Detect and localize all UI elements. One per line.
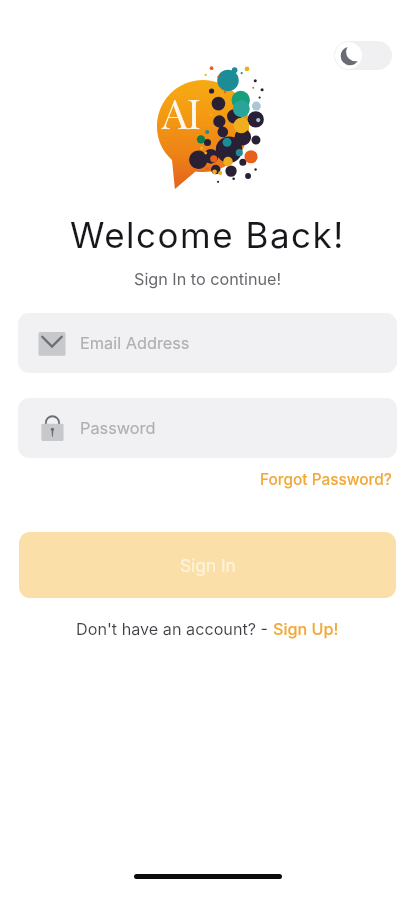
staticText: Email Address: [80, 333, 190, 353]
staticText: Password: [80, 418, 156, 438]
staticText: Welcome Back!: [70, 214, 345, 256]
button[interactable]: Sign Up!: [273, 619, 339, 639]
staticText: Sign In: [180, 555, 236, 576]
staticText: Sign Up!: [273, 619, 339, 639]
button[interactable]: Password: [18, 398, 397, 458]
staticText: Forgot Password?: [260, 470, 392, 489]
button[interactable]: Sign In: [19, 532, 396, 598]
button[interactable]: Forgot Password?: [260, 470, 392, 489]
staticText: AI: [162, 85, 201, 140]
button[interactable]: Email Address: [18, 313, 397, 373]
button[interactable]: Toggle dark mode: [334, 41, 392, 70]
staticText: Don't have an account? -: [76, 619, 273, 639]
staticText: Sign In to continue!: [134, 269, 282, 289]
